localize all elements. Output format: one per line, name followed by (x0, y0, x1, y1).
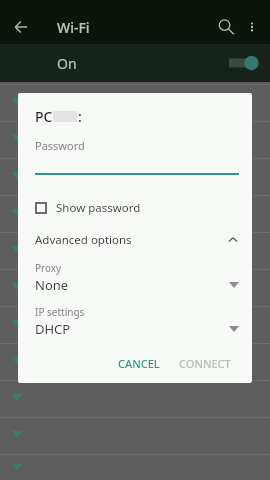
button[interactable] (0, 380, 270, 417)
staticText: Show password (56, 200, 141, 216)
button[interactable] (0, 121, 270, 158)
button[interactable] (0, 269, 270, 306)
staticText: DHCP (35, 320, 71, 338)
button[interactable]: More options (242, 17, 262, 37)
button[interactable]: Show password (35, 200, 239, 216)
staticText: PC (35, 107, 53, 126)
button[interactable]: Search (214, 15, 238, 39)
button[interactable]: Back (10, 16, 32, 38)
other: Wi-Fi on (229, 54, 259, 72)
staticText: CONNECT (179, 356, 231, 371)
staticText: Advanced options (35, 232, 132, 248)
button[interactable]: On (0, 44, 270, 82)
staticText: None (35, 276, 69, 294)
staticText: Password (35, 138, 85, 153)
button[interactable] (0, 306, 270, 343)
button[interactable] (0, 84, 270, 121)
staticText: On (57, 54, 77, 73)
button[interactable] (0, 454, 270, 480)
button[interactable] (0, 343, 270, 380)
button[interactable]: CANCEL (110, 350, 168, 377)
staticText: CANCEL (118, 356, 160, 371)
button[interactable]: Proxy (35, 261, 239, 294)
staticText: IP settings (35, 305, 85, 319)
staticText: : (78, 107, 82, 126)
button[interactable] (0, 158, 270, 195)
staticText: Wi-Fi (57, 18, 90, 37)
staticText: Proxy (35, 261, 62, 275)
button[interactable]: IP settings (35, 305, 239, 338)
button[interactable] (0, 195, 270, 232)
button[interactable]: Advanced options (35, 232, 239, 248)
button[interactable] (0, 232, 270, 269)
button[interactable]: CONNECT (171, 350, 239, 377)
button[interactable] (0, 417, 270, 454)
